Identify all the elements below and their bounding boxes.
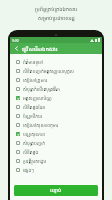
button[interactable]: អត្តសញ្ញាណប័ណ្ណ	[14, 93, 98, 102]
staticText: លិខិតបញ្ជាក់អត្តសញ្ញាណបុគ្គល	[23, 68, 74, 74]
staticText: ប័ណ្ណបើកបរ	[23, 113, 43, 119]
staticText: សំបុត្របញ្ជាក់	[23, 140, 45, 146]
staticText: បណ្ណសុខភាព	[23, 131, 45, 137]
button[interactable]: សៀវភៅសុខភាពកុមារ	[14, 120, 98, 129]
staticText: លិខិតឆ្លងដែន	[23, 104, 46, 110]
button[interactable]: ព័ត៌មានទូទៅ	[14, 57, 98, 66]
staticText: សំបុត្រកំណើតបុត្រធីតា	[23, 86, 60, 92]
button[interactable]: លិខិតបញ្ជាក់អត្តសញ្ញាណបុគ្គល	[14, 66, 98, 75]
button[interactable]: លិខិតឆ្លង	[14, 147, 98, 156]
button[interactable]: បន្ទាប់	[14, 185, 98, 196]
button[interactable]: Back	[12, 44, 21, 53]
staticText: បន្ទាប់	[50, 187, 62, 194]
staticText: ជ្រើសរើសឯកសារ	[22, 45, 58, 52]
staticText: 9:00	[12, 38, 19, 43]
staticText: ផ្សេងៗ	[23, 167, 34, 173]
staticText: សៀវភៅសុខភាពកុមារ	[23, 122, 59, 128]
staticText: ប្រព័ន្ធគ្រប់គ្រងឯកសារ	[35, 5, 77, 12]
button[interactable]: ផ្សេងៗ	[14, 165, 98, 174]
button[interactable]: លិខិតឆ្លងដែន	[14, 102, 98, 111]
staticText: អត្តសញ្ញាណប័ណ្ណ	[23, 95, 52, 101]
button[interactable]: សំបុត្រកំណើតបុត្រធីតា	[14, 84, 98, 93]
staticText: លិខិតឆ្លង	[23, 149, 39, 155]
staticText: ប្រវត្តិរូបសង្ខេប	[23, 158, 47, 164]
staticText: ព័ត៌មានទូទៅ	[23, 59, 44, 65]
staticText: សៀវភៅគ្រួសារ	[23, 77, 48, 83]
button[interactable]: បណ្ណសុខភាព	[14, 129, 98, 138]
button[interactable]: ប្រវត្តិរូបសង្ខេប	[14, 156, 98, 165]
staticText: សម្រាប់ប្រជាពលរដ្ឋ	[38, 14, 75, 21]
button[interactable]: ប័ណ្ណបើកបរ	[14, 111, 98, 120]
button[interactable]: សៀវភៅគ្រួសារ	[14, 75, 98, 84]
button[interactable]: សំបុត្របញ្ជាក់	[14, 138, 98, 147]
